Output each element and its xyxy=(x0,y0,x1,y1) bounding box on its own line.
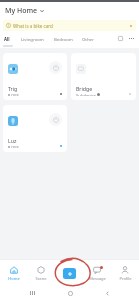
staticText: Subdevice xyxy=(76,93,96,96)
button[interactable]: Profile xyxy=(111,262,139,285)
button[interactable]: Home xyxy=(0,262,27,285)
staticText: Luz xyxy=(8,137,17,144)
staticText: OFF xyxy=(11,93,19,96)
staticText: My Home xyxy=(5,6,38,16)
staticText: Message xyxy=(89,276,106,281)
button[interactable]: My Home xyxy=(5,6,44,16)
button[interactable]: Grid layout xyxy=(115,33,126,44)
staticText: Livingroom xyxy=(21,36,44,42)
button[interactable]: Trig xyxy=(3,53,67,100)
staticText: Bridge xyxy=(76,85,93,92)
button[interactable]: What is a bike card xyxy=(3,20,136,31)
button[interactable]: Livingroom xyxy=(21,36,44,42)
staticText: All xyxy=(4,36,10,42)
button[interactable]: Scene xyxy=(27,262,55,285)
staticText: Profile xyxy=(119,276,132,281)
staticText: Home xyxy=(8,276,20,281)
staticText: Bedroom xyxy=(54,36,73,42)
staticText: Scene xyxy=(35,276,47,281)
button[interactable]: Back xyxy=(101,287,113,299)
staticText: OFF xyxy=(11,145,19,148)
staticText: Trig xyxy=(8,85,18,92)
button[interactable]: All xyxy=(4,36,10,42)
button[interactable]: Bedroom xyxy=(54,36,73,42)
staticText: Other xyxy=(82,36,94,42)
other: Dismiss xyxy=(129,24,133,28)
button[interactable]: Home xyxy=(64,287,76,299)
staticText: What is a bike card xyxy=(13,23,53,29)
button[interactable]: Message xyxy=(83,262,111,285)
button[interactable]: Bridge xyxy=(71,53,136,100)
button[interactable]: Recent apps xyxy=(26,287,38,299)
button[interactable]: Power xyxy=(49,61,62,74)
button[interactable]: Add device xyxy=(63,268,76,279)
button[interactable]: Power xyxy=(49,113,62,126)
button[interactable]: Other xyxy=(82,36,94,42)
button[interactable]: Luz xyxy=(3,105,67,152)
button[interactable]: More options xyxy=(126,33,137,44)
